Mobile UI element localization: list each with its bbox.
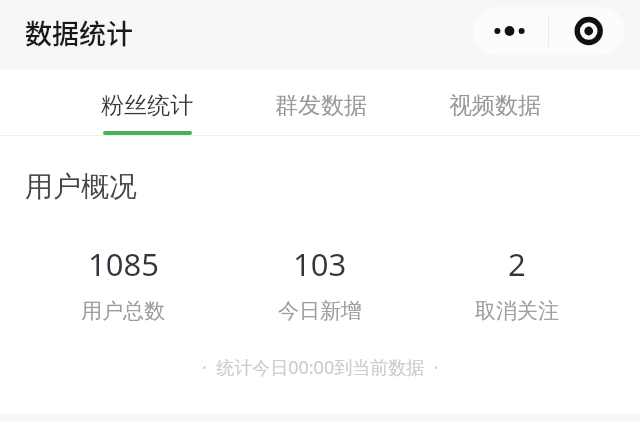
staticText: 取消关注 — [475, 298, 559, 323]
button[interactable]: 2 — [418, 243, 615, 323]
staticText: 103 — [293, 243, 347, 285]
staticText: 今日新增 — [278, 298, 362, 323]
staticText: 2 — [508, 243, 526, 285]
staticText: 1085 — [88, 243, 159, 285]
button[interactable]: 1085 — [25, 243, 221, 323]
staticText: · 统计今日00:00到当前数据 · — [202, 355, 439, 380]
staticText: 粉丝统计 — [101, 91, 193, 120]
staticText: 视频数据 — [449, 91, 541, 120]
button[interactable]: 103 — [221, 243, 418, 323]
staticText: 用户概况 — [25, 169, 137, 204]
staticText: 用户总数 — [81, 298, 165, 323]
button[interactable]: More options — [473, 7, 548, 55]
button[interactable]: 群发数据 — [234, 70, 408, 135]
button[interactable]: 视频数据 — [408, 70, 582, 135]
staticText: 数据统计 — [25, 13, 133, 52]
staticText: 群发数据 — [275, 91, 367, 120]
button[interactable]: 粉丝统计 — [60, 70, 234, 135]
button[interactable]: Close mini program — [549, 7, 625, 55]
